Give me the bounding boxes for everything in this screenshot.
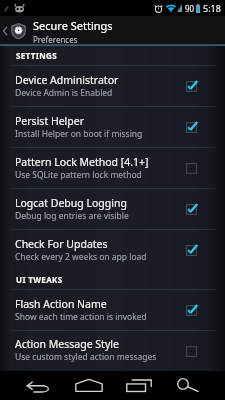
staticText: Check every 2 weeks on app load: [15, 251, 147, 263]
button[interactable]: Pattern Lock Method [4.1+]: [0, 148, 225, 189]
staticText: Device Admin is Enabled: [15, 87, 113, 99]
button[interactable]: Device Administrator: [0, 66, 225, 107]
staticText: Show each time action is invoked: [15, 311, 147, 323]
button[interactable]: Back: [25, 371, 52, 400]
staticText: Check For Updates: [15, 237, 108, 251]
staticText: Persist Helper: [15, 114, 85, 128]
staticText: Debug log entries are visible: [15, 210, 129, 222]
button[interactable]: Persist Helper: [0, 107, 225, 148]
button[interactable]: Recent apps: [126, 371, 152, 400]
staticText: UI TWEAKS: [16, 274, 63, 285]
button[interactable]: Search: [175, 371, 200, 400]
staticText: Preferences: [33, 34, 78, 45]
button[interactable]: Flash Action Name: [0, 290, 225, 331]
staticText: 5:18: [203, 2, 221, 14]
button[interactable]: Navigate up: [0, 16, 225, 46]
button[interactable]: Action Message Style: [0, 331, 225, 371]
staticText: SETTINGS: [16, 50, 57, 61]
button[interactable]: Check For Updates: [0, 230, 225, 271]
staticText: 90: [185, 3, 195, 14]
staticText: Install Helper on boot if missing: [15, 128, 143, 140]
staticText: Logcat Debug Logging: [15, 196, 127, 210]
staticText: Pattern Lock Method [4.1+]: [15, 155, 149, 169]
staticText: Flash Action Name: [15, 297, 107, 311]
staticText: Use SQLite pattern lock method: [15, 169, 142, 181]
button[interactable]: Logcat Debug Logging: [0, 189, 225, 230]
button[interactable]: Home: [75, 371, 103, 400]
staticText: Secure Settings: [33, 18, 113, 33]
staticText: Device Administrator: [15, 73, 119, 87]
staticText: Action Message Style: [15, 337, 119, 351]
staticText: Use custom styled action messages: [15, 351, 157, 363]
